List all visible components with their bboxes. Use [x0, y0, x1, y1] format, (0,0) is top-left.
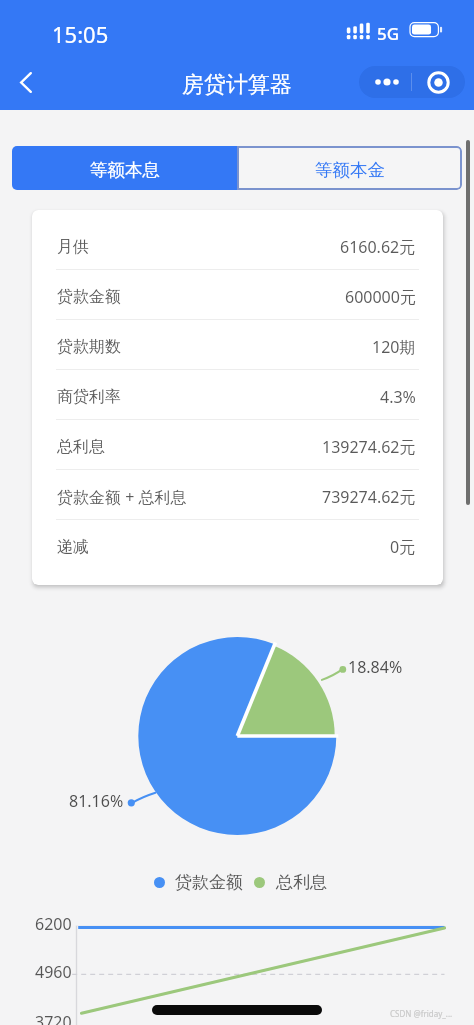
staticText: 600000元	[345, 286, 416, 308]
staticText: 递减	[57, 537, 89, 557]
staticText: 等额本金	[315, 159, 385, 181]
staticText: 4.3%	[380, 386, 416, 408]
staticText: 0元	[390, 536, 416, 558]
staticText: 总利息	[57, 437, 105, 457]
staticText: 房贷计算器	[182, 71, 292, 99]
staticText: 贷款金额	[175, 872, 243, 893]
staticText: 3720	[35, 1011, 72, 1025]
staticText: 18.84%	[348, 656, 403, 678]
button[interactable]: 月供	[32, 220, 443, 270]
button[interactable]: 递减	[32, 520, 443, 570]
staticText: 5G	[377, 22, 400, 45]
staticText: 贷款期数	[57, 337, 121, 357]
staticText: 总利息	[276, 872, 327, 893]
staticText: 139274.62元	[322, 436, 416, 458]
button[interactable]: More options	[359, 66, 465, 98]
staticText: 739274.62元	[322, 486, 416, 508]
button[interactable]: 等额本息	[12, 146, 237, 190]
staticText: 4960	[35, 961, 72, 983]
staticText: 6160.62元	[340, 236, 416, 258]
button[interactable]: 总利息	[32, 420, 443, 470]
staticText: 贷款金额 + 总利息	[57, 486, 187, 508]
button[interactable]: 商贷利率	[32, 370, 443, 420]
staticText: 81.16%	[69, 790, 124, 812]
staticText: 商贷利率	[57, 387, 121, 407]
staticText: 等额本息	[90, 159, 160, 181]
staticText: CSDN @friday_...	[390, 1008, 453, 1019]
staticText: 120期	[372, 336, 416, 358]
staticText: 月供	[57, 237, 89, 257]
staticText: 6200	[35, 913, 72, 935]
staticText: 贷款金额	[57, 287, 121, 307]
button[interactable]: 贷款金额 + 总利息	[32, 470, 443, 520]
button[interactable]: 等额本金	[237, 146, 462, 190]
staticText: 15:05	[52, 19, 109, 49]
button[interactable]: 贷款金额	[32, 270, 443, 320]
button[interactable]: Back	[2, 61, 44, 103]
button[interactable]: 贷款期数	[32, 320, 443, 370]
